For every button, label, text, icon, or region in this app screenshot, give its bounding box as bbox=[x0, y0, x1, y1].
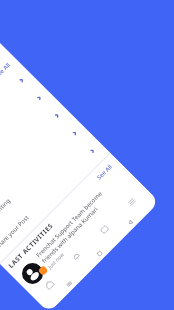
staticText: LAST ACTIVITIES bbox=[6, 221, 55, 270]
staticText: Just now bbox=[47, 251, 66, 271]
staticText: friends with alpana Kumari bbox=[40, 205, 100, 265]
button[interactable]: See All bbox=[94, 161, 116, 183]
staticText: Digital Painting bbox=[0, 196, 13, 233]
staticText: Frenchat Support Team become bbox=[35, 190, 104, 259]
button[interactable]: Photography Basics bbox=[0, 63, 38, 192]
button[interactable]: See All bbox=[0, 59, 14, 81]
staticText: See All bbox=[0, 61, 12, 80]
button[interactable]: Messages bbox=[85, 210, 124, 248]
button[interactable]: Home bbox=[29, 265, 69, 304]
button[interactable]: Home bbox=[80, 234, 119, 273]
button[interactable]: Frenchat Support Team become bbox=[12, 165, 140, 293]
button[interactable]: Back bbox=[111, 202, 150, 242]
staticText: See All bbox=[95, 162, 114, 181]
button[interactable]: Recent apps bbox=[49, 265, 88, 304]
button[interactable]: Music Production bbox=[0, 99, 74, 228]
button[interactable]: Creative Writing Club bbox=[0, 81, 56, 210]
button[interactable]: Notifications bbox=[57, 237, 96, 276]
button[interactable]: Menu bbox=[112, 182, 151, 221]
staticText: Share your Post bbox=[0, 213, 31, 251]
button[interactable]: Digital Painting bbox=[0, 116, 92, 245]
button[interactable]: Share your Post bbox=[0, 134, 109, 263]
